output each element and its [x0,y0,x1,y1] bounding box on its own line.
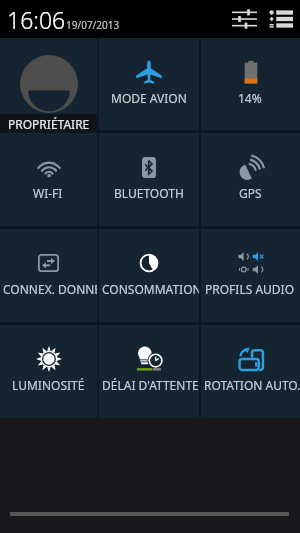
staticText: WI-FI [33,185,63,201]
staticText: ROTATION AUTO. [204,377,300,393]
staticText: 19/07/2013 [66,18,120,32]
staticText: GPS [239,185,262,201]
button[interactable]: CONSOMMATION DONN. [99,229,199,322]
staticText: PROFILS AUDIO [205,281,295,297]
staticText: CONNEX. DONNÉES [3,281,97,297]
button[interactable]: CONNEX. DONNÉES [0,229,97,322]
staticText: BLUETOOTH [114,185,184,201]
staticText: LUMINOSITÉ [12,377,85,393]
button[interactable]: Notifications list [269,10,293,28]
button[interactable]: PROFILS AUDIO [201,229,300,322]
staticText: PROPRIÉTAIRE [8,116,90,132]
button[interactable]: 14% [201,38,300,130]
button[interactable]: LUMINOSITÉ [0,325,97,418]
button[interactable]: BLUETOOTH [99,133,199,226]
button[interactable]: WI-FI [0,133,97,226]
button[interactable]: Quick settings [232,10,257,28]
button[interactable]: MODE AVION [99,38,199,130]
staticText: DÉLAI D'ATTENTE [102,377,199,393]
staticText: MODE AVION [111,90,187,106]
button[interactable]: GPS [201,133,300,226]
button[interactable]: ROTATION AUTO. [201,325,300,418]
staticText: CONSOMMATION DONN. [102,281,199,297]
button[interactable]: DÉLAI D'ATTENTE [99,325,199,418]
staticText: 14% [238,90,262,106]
button[interactable]: User: Propriétaire [0,38,97,130]
staticText: 16:06 [7,4,66,35]
